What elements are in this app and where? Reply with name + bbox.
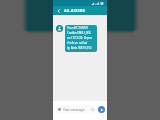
button[interactable]: Back: [55, 7, 62, 14]
button[interactable]: Text message: [55, 105, 96, 114]
staticText: Your A/C XX0078 Credited INR 5,000 on 17…: [67, 26, 92, 50]
button[interactable]: Send: [98, 106, 105, 113]
staticText: AX-AXISBK: [64, 8, 86, 14]
staticText: Text message: [63, 107, 85, 112]
button[interactable]: Your A/C XX0078 Credited INR 5,000 on 17…: [65, 25, 97, 52]
button[interactable]: Contact avatar: [56, 25, 63, 32]
